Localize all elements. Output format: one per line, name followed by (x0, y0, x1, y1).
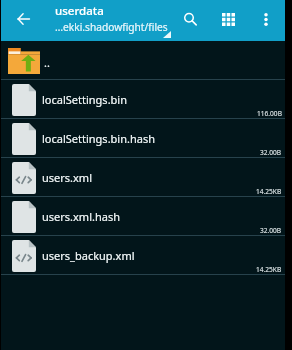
button[interactable]: users_backup.xml (1, 236, 285, 275)
staticText: 32.00B (260, 148, 282, 157)
staticText: 14.25KB (256, 187, 282, 196)
button[interactable]: localSettings.bin (1, 80, 285, 119)
button[interactable]: Back (9, 5, 37, 33)
staticText: 116.00B (257, 109, 282, 118)
staticText: localSettings.bin.hash (42, 131, 155, 146)
staticText: …ekki.shadowfight/files (55, 20, 168, 34)
button[interactable]: localSettings.bin.hash (1, 119, 285, 158)
button[interactable]: Search (171, 0, 209, 38)
staticText: users.xml (42, 170, 92, 185)
button[interactable]: users.xml (1, 158, 285, 197)
staticText: localSettings.bin (42, 92, 127, 107)
staticText: users_backup.xml (42, 248, 135, 263)
button[interactable]: users.xml.hash (1, 197, 285, 236)
staticText: 14.25KB (256, 265, 282, 274)
button[interactable]: More options (247, 0, 285, 38)
button[interactable]: .. (1, 41, 285, 80)
button[interactable]: Grid view (209, 0, 247, 38)
staticText: 32.00B (260, 226, 282, 235)
staticText: users.xml.hash (42, 209, 120, 224)
staticText: .. (44, 55, 50, 70)
staticText: userdata (55, 3, 104, 19)
